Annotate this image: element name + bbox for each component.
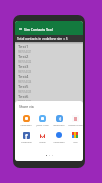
staticText: 987654324 [18,80,32,84]
staticText: Roll [73,140,78,143]
button[interactable]: Test2 [16,54,82,64]
staticText: Messages [53,140,65,143]
staticText: Messages [20,123,32,126]
staticText: Bluetooth [53,123,65,126]
staticText: Test1 [18,44,29,50]
staticText: 987654322 [18,60,32,64]
staticText: Test4 [18,74,29,80]
staticText: Saved to Roll [68,123,83,126]
button[interactable]: Gmail [34,131,50,143]
staticText: Share via [19,104,34,109]
button[interactable]: Open navigation menu [18,27,22,31]
button[interactable]: Bluetooth [51,114,67,126]
button[interactable]: Roll [67,131,83,143]
button[interactable]: Test6 [16,94,82,104]
button[interactable]: Test1 [16,44,82,54]
staticText: Sim Contacts Tool [24,27,53,32]
staticText: Facebook [21,140,32,143]
staticText: f [25,132,28,139]
staticText: Jotter Note [36,123,49,126]
staticText: Gmail [39,140,46,143]
staticText: Test2 [18,54,29,60]
staticText: 987654323 [18,70,32,74]
button[interactable]: Messages [18,114,34,126]
button[interactable]: Test4 [16,74,82,84]
staticText: Test6 [18,94,29,100]
staticText: 987654321 [18,50,32,54]
staticText: Test3 [18,64,29,70]
staticText: 987654326 [18,100,32,104]
staticText: Total contacts in vodafone sim = 5 [17,37,68,41]
button[interactable]: Messages [51,131,67,143]
staticText: Test5 [18,84,29,90]
button[interactable]: Facebook [18,131,34,143]
button[interactable]: Test3 [16,64,82,74]
button[interactable]: Test5 [16,84,82,94]
staticText: 987654325 [18,90,32,94]
button[interactable]: Saved to Roll [67,114,83,126]
button[interactable]: Jotter Note [34,114,50,126]
